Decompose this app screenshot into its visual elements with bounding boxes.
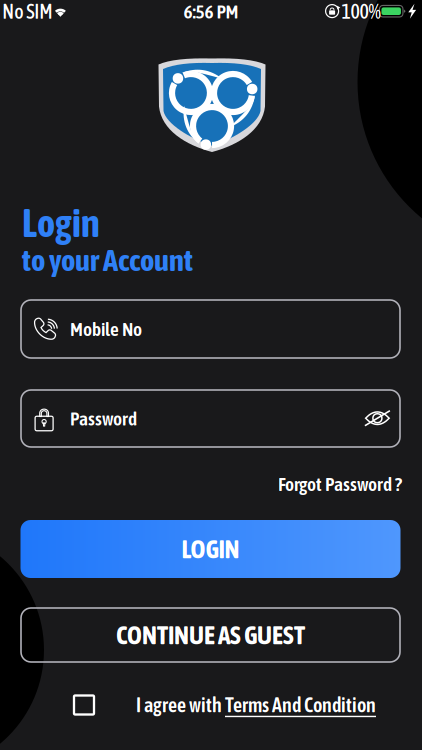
staticText: to your Account — [22, 242, 193, 277]
staticText: Mobile No — [70, 318, 142, 340]
button[interactable]: Forgot Password ? — [222, 470, 402, 498]
button[interactable]: Mobile No — [21, 300, 400, 358]
button[interactable]: LOGIN — [20, 520, 400, 578]
staticText: Forgot Password ? — [278, 473, 402, 495]
button[interactable]: I agree with — [74, 690, 374, 720]
button[interactable]: CONTINUE AS GUEST — [21, 608, 400, 662]
staticText: LOGIN — [181, 534, 239, 563]
staticText: 6:56 PM — [183, 0, 238, 23]
button[interactable]: Password — [21, 390, 400, 447]
staticText: No SIM — [2, 0, 52, 23]
staticText: Password — [70, 407, 137, 430]
staticText: Terms And Condition — [225, 693, 376, 716]
staticText: I agree with — [136, 693, 225, 716]
staticText: Login — [22, 201, 100, 245]
staticText: CONTINUE AS GUEST — [116, 620, 305, 649]
staticText: 100% — [341, 0, 380, 23]
